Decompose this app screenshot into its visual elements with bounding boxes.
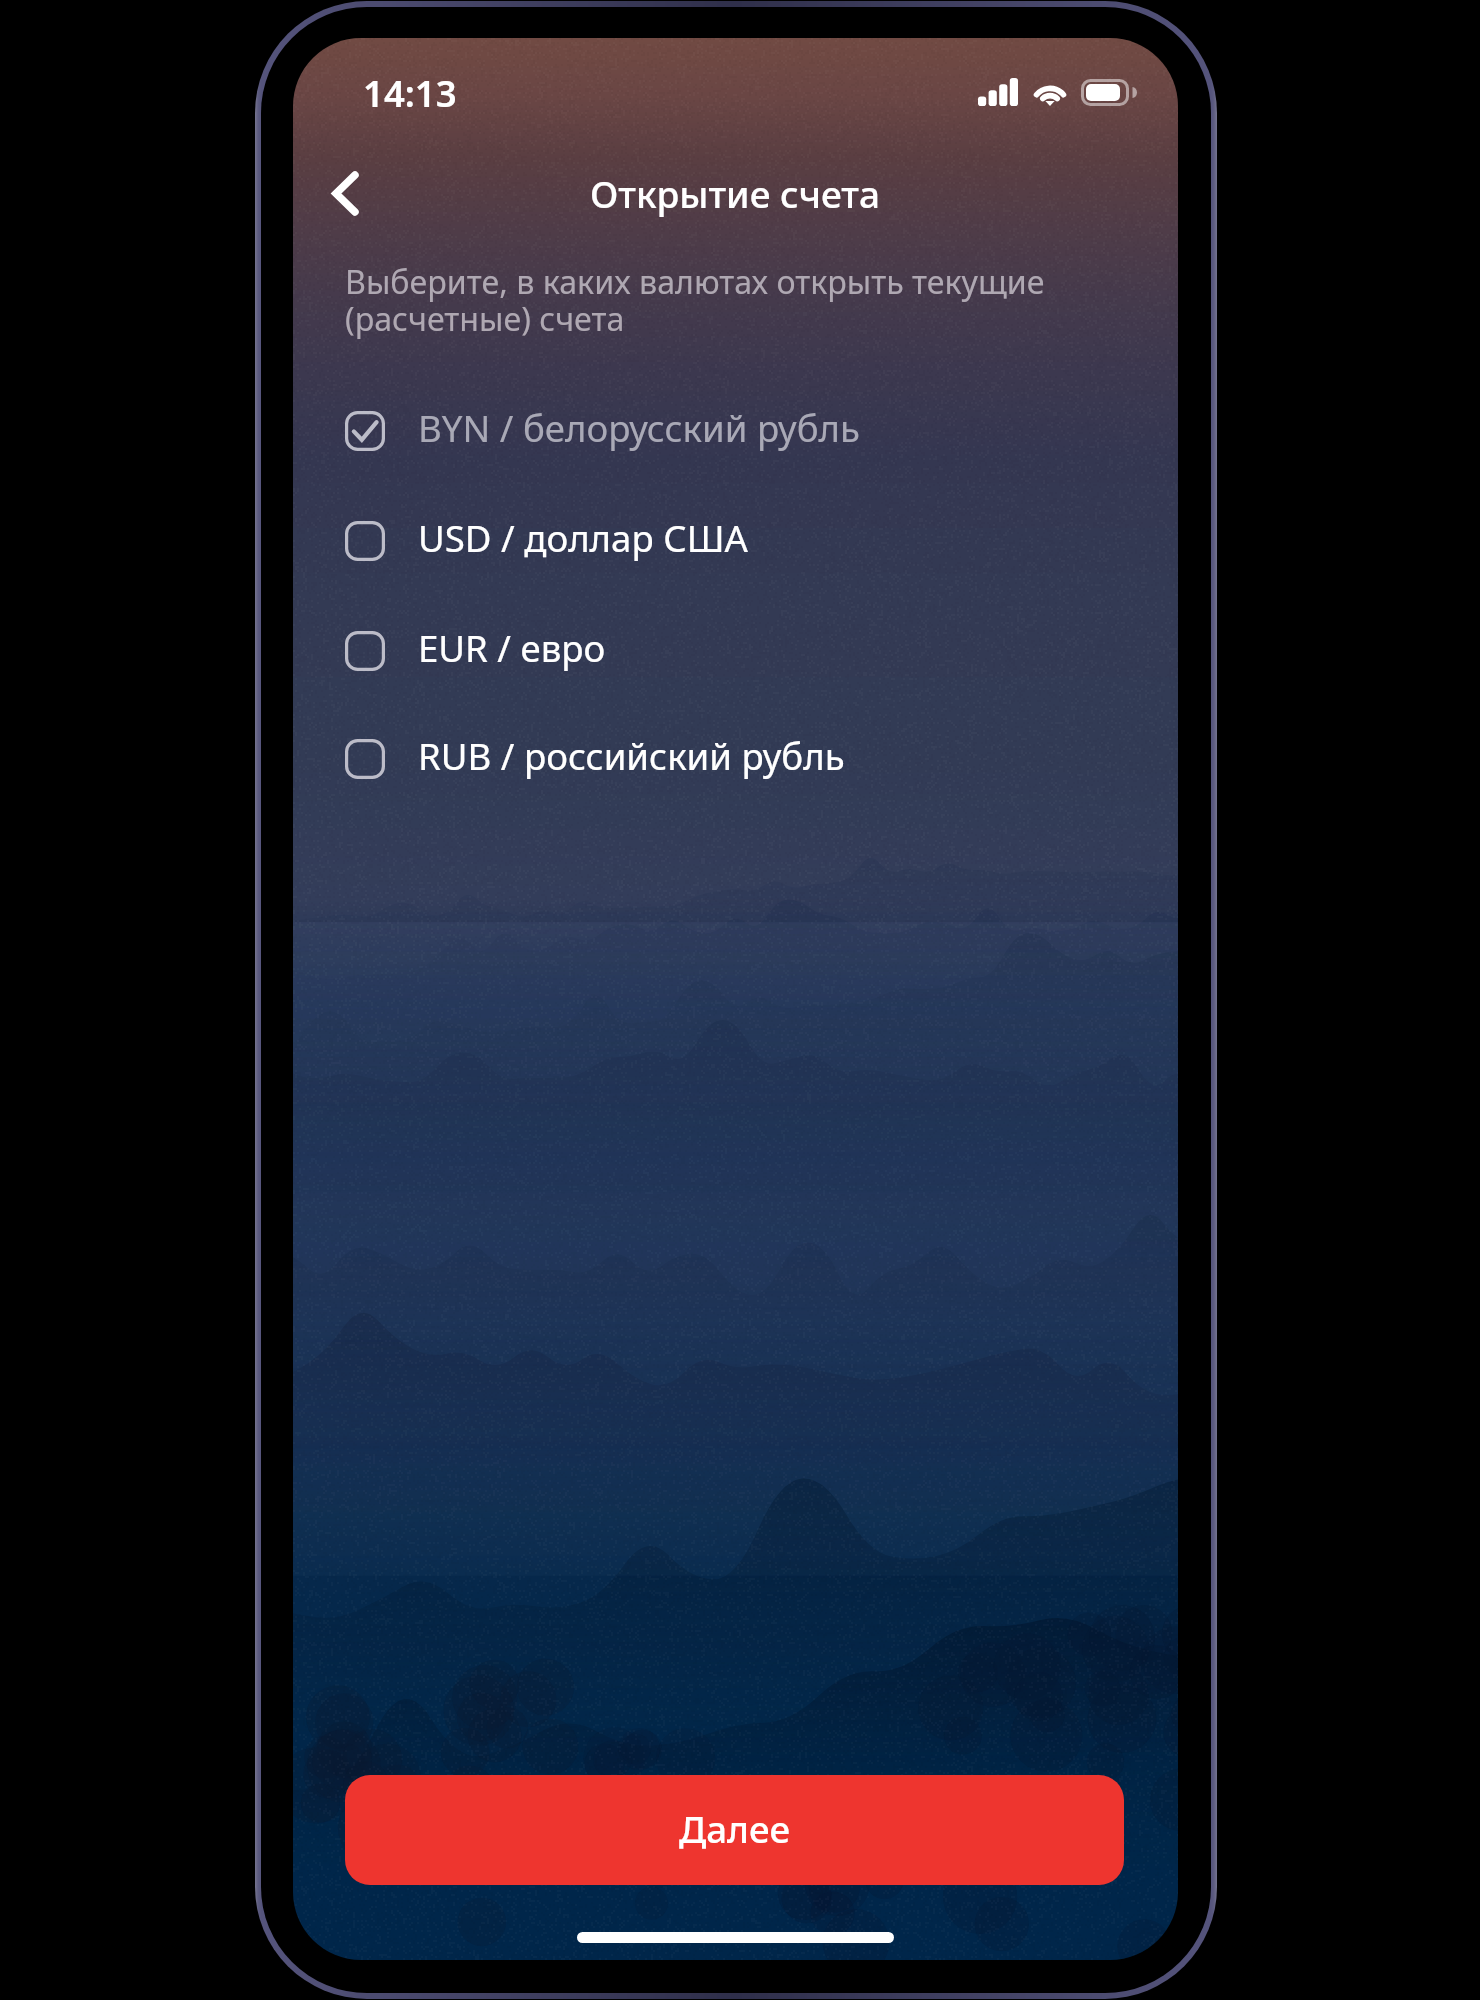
button[interactable]: EUR / евро <box>293 596 1178 706</box>
button[interactable]: RUB / российский рубль <box>293 704 1178 814</box>
staticText: RUB / российский рубль <box>418 731 845 781</box>
staticText: Открытие счета <box>590 168 881 218</box>
staticText: Далее <box>679 1804 791 1854</box>
staticText: 14:13 <box>363 68 457 118</box>
staticText: Выберите, в каких валютах открыть текущи… <box>345 260 1045 341</box>
button[interactable]: Далее <box>345 1775 1124 1885</box>
staticText: BYN / белорусский рубль <box>418 403 861 453</box>
button[interactable]: Back <box>307 155 383 231</box>
button[interactable]: USD / доллар США <box>293 486 1178 596</box>
staticText: USD / доллар США <box>418 513 748 563</box>
button[interactable]: BYN / белорусский рубль <box>293 376 1178 486</box>
staticText: EUR / евро <box>418 623 606 673</box>
